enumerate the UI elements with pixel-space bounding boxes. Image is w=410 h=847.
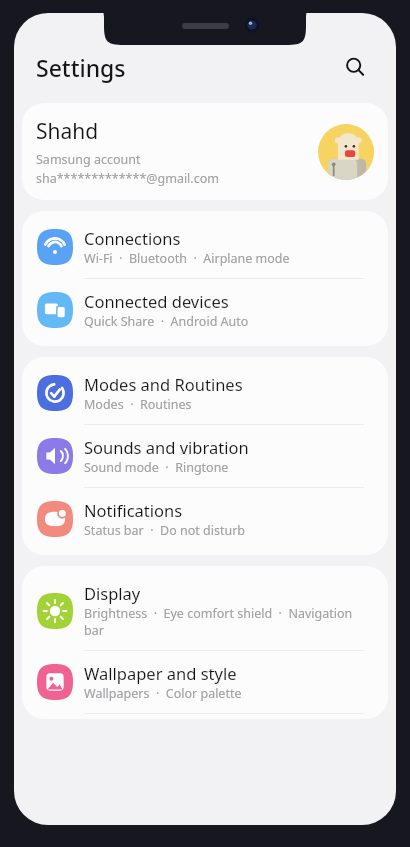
staticText: Modes and Routines — [84, 373, 243, 395]
button[interactable]: Sounds and vibration — [22, 425, 388, 487]
button[interactable]: Modes and Routines — [22, 362, 388, 424]
staticText: Settings — [36, 52, 126, 83]
staticText: sha*************@gmail.com — [36, 170, 219, 187]
button[interactable]: Notifications — [22, 488, 388, 550]
staticText: Wallpaper and style — [84, 662, 237, 684]
staticText: Brightness · Eye comfort shield · Naviga… — [84, 605, 354, 639]
staticText: Sound mode · Ringtone — [84, 459, 229, 476]
staticText: Connections — [84, 227, 181, 249]
staticText: Display — [84, 582, 141, 604]
staticText: Status bar · Do not disturb — [84, 522, 246, 539]
button[interactable]: Shahd — [22, 103, 388, 200]
button[interactable]: Connected devices — [22, 279, 388, 341]
button[interactable]: Search — [337, 49, 373, 85]
staticText: Quick Share · Android Auto — [84, 313, 249, 330]
button[interactable]: Connections — [22, 216, 388, 278]
staticText: Connected devices — [84, 290, 229, 312]
staticText: Wallpapers · Color palette — [84, 685, 242, 702]
staticText: Samsung account — [36, 151, 141, 168]
staticText: Modes · Routines — [84, 396, 192, 413]
staticText: Sounds and vibration — [84, 436, 249, 458]
staticText: Wi-Fi · Bluetooth · Airplane mode — [84, 250, 290, 267]
button[interactable]: Wallpaper and style — [22, 651, 388, 713]
staticText: Notifications — [84, 499, 183, 521]
button[interactable]: Display — [22, 571, 388, 650]
staticText: Shahd — [36, 117, 99, 146]
